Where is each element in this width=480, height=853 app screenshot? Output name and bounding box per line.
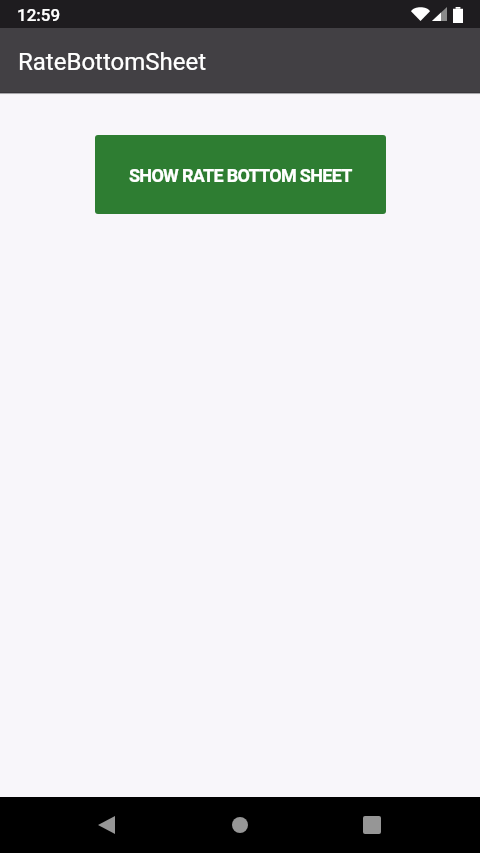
button[interactable]: Recent apps xyxy=(348,801,396,849)
staticText: 12:59 xyxy=(17,5,61,25)
button[interactable]: Home xyxy=(216,801,264,849)
staticText: SHOW RATE BOTTOM SHEET xyxy=(129,165,352,186)
staticText: RateBottomSheet xyxy=(18,48,207,76)
button[interactable]: Back xyxy=(82,801,130,849)
button[interactable]: SHOW RATE BOTTOM SHEET xyxy=(95,135,386,214)
